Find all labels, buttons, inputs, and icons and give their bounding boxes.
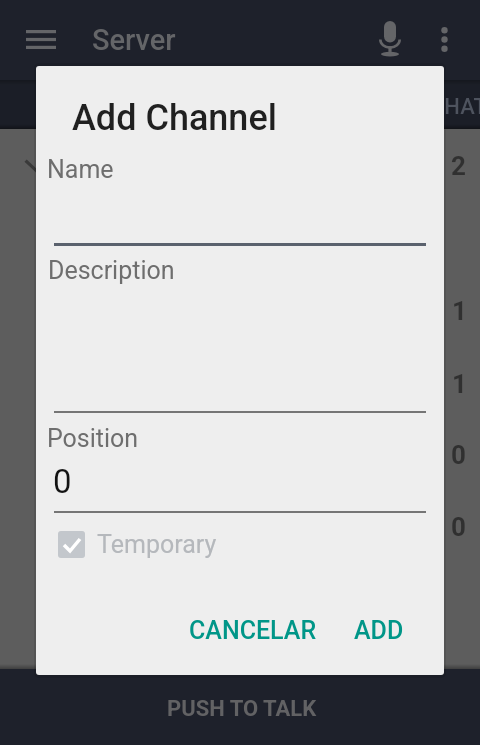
button[interactable]: PUSH TO TALK — [0, 669, 480, 745]
staticText: Position — [47, 424, 139, 453]
button[interactable]: ADD — [340, 604, 418, 657]
button[interactable]: CANCELAR — [175, 604, 331, 657]
staticText: CHAT — [430, 94, 480, 120]
button[interactable]: Temporary — [44, 520, 217, 568]
button[interactable]: CHAT — [390, 80, 480, 129]
staticText: CANCELAR — [189, 616, 317, 645]
staticText: Add Channel — [72, 97, 277, 139]
staticText: 1 — [452, 369, 467, 399]
staticText: Temporary — [97, 530, 217, 559]
button[interactable]: Microphone — [362, 11, 418, 67]
staticText: 0 — [451, 440, 466, 470]
button[interactable]: Open navigation drawer — [13, 11, 69, 67]
staticText: 0 — [451, 512, 466, 542]
staticText: 1 — [452, 296, 467, 326]
staticText: Server — [92, 23, 176, 57]
staticText: Name — [47, 155, 114, 184]
staticText: 2 — [451, 151, 466, 181]
staticText: PUSH TO TALK — [167, 696, 317, 722]
staticText: Description — [48, 256, 175, 285]
staticText: ADD — [354, 616, 404, 645]
button[interactable]: More options — [416, 11, 472, 67]
staticText: 0 — [53, 462, 72, 501]
